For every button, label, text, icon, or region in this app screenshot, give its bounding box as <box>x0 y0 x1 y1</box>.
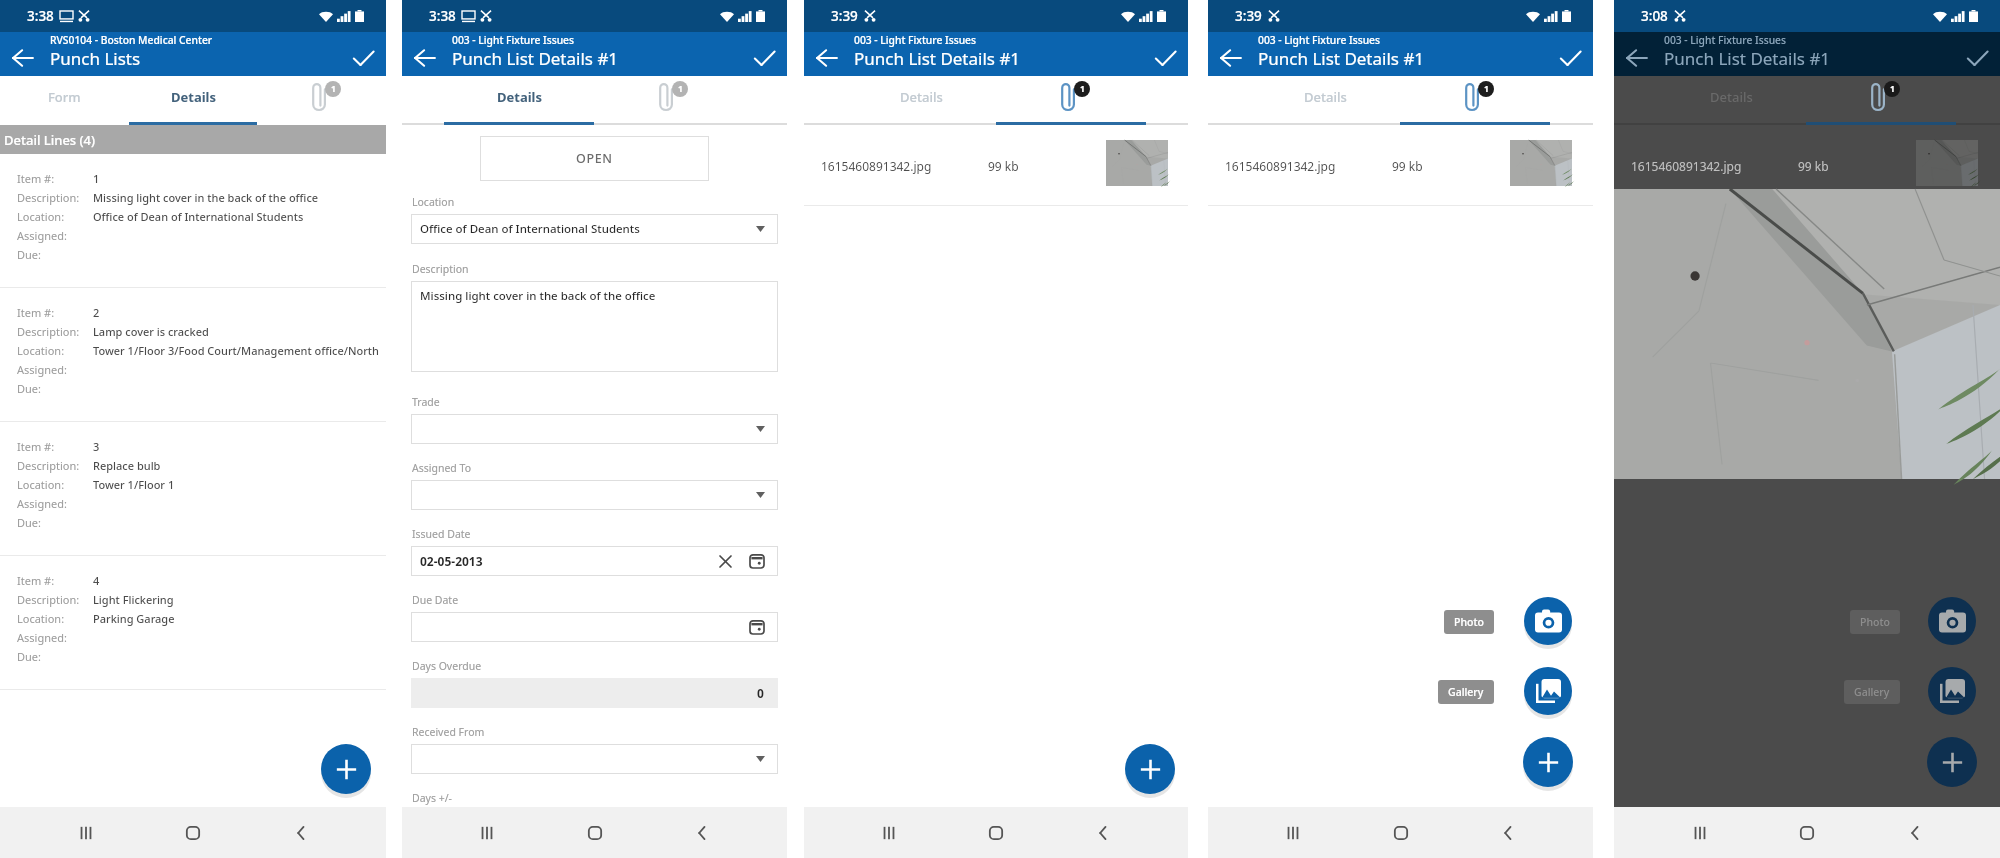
button[interactable]: Details <box>1656 76 1806 125</box>
staticText: OPEN <box>576 150 613 167</box>
staticText: Due: <box>17 649 93 664</box>
button[interactable]: Attachments <box>1400 76 1550 125</box>
button[interactable]: Recents <box>64 811 108 855</box>
button[interactable]: Details <box>846 76 996 125</box>
staticText: Location <box>412 195 455 209</box>
button[interactable]: Details <box>1250 76 1400 125</box>
staticText: Punch List Details #1 <box>452 47 619 70</box>
staticText: Office of Dean of International Students <box>420 221 640 237</box>
staticText: Details <box>1710 88 1753 106</box>
staticText: 99 kb <box>1392 158 1423 174</box>
button[interactable]: Home <box>974 811 1018 855</box>
button[interactable] <box>411 414 778 444</box>
button[interactable] <box>411 612 778 642</box>
staticText: 3:39 <box>831 7 858 25</box>
button[interactable]: Recents <box>1678 811 1722 855</box>
button[interactable]: Action <box>1927 737 1977 787</box>
button[interactable]: Home <box>1379 811 1423 855</box>
button[interactable]: Back <box>1486 811 1530 855</box>
button[interactable]: Photo <box>1850 610 1900 634</box>
staticText: Location: <box>17 611 93 626</box>
button[interactable]: Home <box>171 811 215 855</box>
staticText: Tower 1/Floor 3/Food Court/Management of… <box>93 343 386 358</box>
button[interactable]: 02-05-2013 <box>411 546 778 576</box>
button[interactable]: Home <box>573 811 617 855</box>
staticText: 99 kb <box>988 158 1019 174</box>
button[interactable]: Back <box>1893 811 1937 855</box>
staticText: Issued Date <box>412 527 471 541</box>
staticText: 1 <box>1080 83 1085 95</box>
button[interactable]: Back <box>279 811 323 855</box>
staticText: Replace bulb <box>93 458 161 473</box>
button[interactable]: Save <box>741 36 787 80</box>
staticText: 4 <box>93 573 100 588</box>
button[interactable]: Add <box>321 744 371 794</box>
button[interactable]: OPEN <box>480 136 709 181</box>
staticText: Item #: <box>17 573 93 588</box>
staticText: Office of Dean of International Students <box>93 209 304 224</box>
button[interactable]: Item #: <box>0 556 386 690</box>
button[interactable]: Add <box>1523 737 1573 787</box>
button[interactable]: Attachments <box>257 76 386 125</box>
button[interactable] <box>411 480 778 510</box>
staticText: Assigned: <box>17 228 93 243</box>
staticText: Photo <box>1454 615 1484 629</box>
button[interactable]: Photo <box>1444 610 1494 634</box>
button[interactable]: Recents <box>867 811 911 855</box>
button[interactable]: Save <box>1547 36 1593 80</box>
button[interactable]: 1615460891342.jpg <box>1208 125 1593 206</box>
staticText: Description: <box>17 592 93 607</box>
button[interactable]: Back <box>0 36 46 80</box>
staticText: 1615460891342.jpg <box>821 158 932 174</box>
button[interactable]: Gallery <box>1844 680 1900 704</box>
button[interactable]: Details <box>129 76 257 125</box>
button[interactable]: Action <box>1928 667 1976 715</box>
button[interactable]: Missing light cover in the back of the o… <box>411 281 778 372</box>
button[interactable]: Attachments <box>996 76 1146 125</box>
staticText: 3 <box>93 439 100 454</box>
staticText: Location: <box>17 343 93 358</box>
staticText: 3:39 <box>1235 7 1262 25</box>
button[interactable]: Recents <box>1271 811 1315 855</box>
button[interactable] <box>411 744 778 774</box>
button[interactable]: Attachments <box>1806 76 1956 125</box>
staticText: Missing light cover in the back of the o… <box>93 190 319 205</box>
button[interactable]: Gallery <box>1438 680 1494 704</box>
button[interactable]: Form <box>0 76 129 125</box>
button[interactable]: Back <box>804 36 850 80</box>
staticText: 1615460891342.jpg <box>1225 158 1336 174</box>
staticText: 1 <box>93 171 100 186</box>
button[interactable]: Back <box>1208 36 1254 80</box>
button[interactable]: Recents <box>465 811 509 855</box>
staticText: RVS0104 - Boston Medical Center <box>50 33 213 47</box>
staticText: 3:08 <box>1641 7 1668 25</box>
button[interactable]: Back <box>402 36 448 80</box>
staticText: Gallery <box>1448 685 1484 699</box>
button[interactable]: Item #: <box>0 422 386 556</box>
staticText: Lamp cover is cracked <box>93 324 209 339</box>
button[interactable]: Attachments <box>594 76 744 125</box>
button[interactable]: Save <box>1954 36 2000 80</box>
button[interactable]: Save <box>1142 36 1188 80</box>
staticText: 003 - Light Fixture Issues <box>854 33 977 47</box>
button[interactable]: Back <box>1081 811 1125 855</box>
button[interactable]: Home <box>1785 811 1829 855</box>
staticText: 003 - Light Fixture Issues <box>452 33 575 47</box>
staticText: Light Flickering <box>93 592 174 607</box>
button[interactable]: Details <box>444 76 594 125</box>
button[interactable]: Add <box>1125 744 1175 794</box>
button[interactable]: 1615460891342.jpg <box>804 125 1188 206</box>
staticText: 1615460891342.jpg <box>1631 158 1742 174</box>
staticText: Punch List Details #1 <box>1258 47 1425 70</box>
button[interactable]: Back <box>680 811 724 855</box>
button[interactable]: Action <box>1928 597 1976 645</box>
button[interactable]: Open gallery <box>1524 667 1572 715</box>
button[interactable]: Back <box>1614 36 1660 80</box>
staticText: Received From <box>412 725 485 739</box>
button[interactable]: Take photo <box>1524 597 1572 645</box>
button[interactable]: Item #: <box>0 288 386 422</box>
button[interactable]: Office of Dean of International Students <box>411 214 778 244</box>
staticText: Gallery <box>1854 685 1890 699</box>
button[interactable]: Item #: <box>0 154 386 288</box>
button[interactable]: Save <box>340 36 386 80</box>
